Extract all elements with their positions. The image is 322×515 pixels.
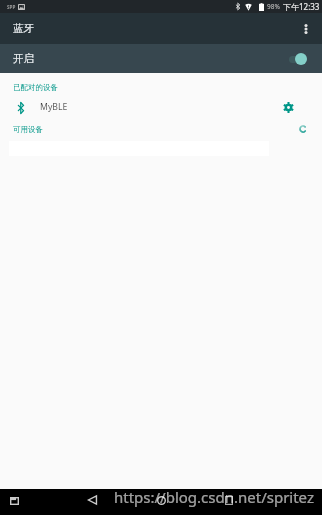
button[interactable]: More options [291,13,320,44]
staticText: https://blog.csdn.net/spritez [114,487,314,507]
button[interactable]: 开启 [0,44,322,73]
staticText: SPP [7,4,16,10]
button[interactable]: MyBLE [0,95,322,121]
staticText: 蓝牙 [13,22,34,35]
staticText: 下午12:33 [283,1,320,12]
staticText: 98% [267,2,280,11]
button[interactable]: Device settings [277,97,299,119]
staticText: MyBLE [40,101,68,113]
staticText: 已配对的设备 [13,83,58,92]
staticText: 开启 [13,52,34,65]
button[interactable]: Home [150,489,172,511]
button[interactable]: Back [81,489,103,511]
button[interactable]: Recent apps [4,490,25,511]
staticText: 可用设备 [13,125,43,134]
button[interactable]: Screenshot [218,490,239,511]
